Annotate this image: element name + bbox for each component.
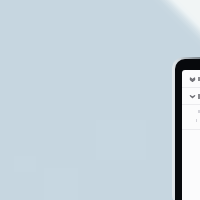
button[interactable]: List item [182,116,200,125]
button[interactable]: General [182,88,200,104]
button[interactable]: List item [182,107,200,116]
button[interactable]: Expand all [182,71,200,87]
